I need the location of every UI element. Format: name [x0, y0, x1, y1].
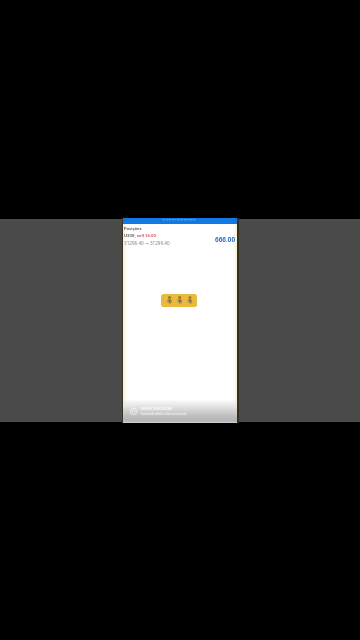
staticText: US30, sell 16.00	[124, 232, 156, 238]
button[interactable]: Posições	[124, 226, 142, 232]
button[interactable]: Trade app bar	[123, 218, 237, 224]
staticText: MENTE_VENCEDORA	[141, 407, 172, 411]
staticText: 31296.40 → 31299.40	[124, 240, 170, 246]
button[interactable]: US30, sell 16.00	[123, 232, 237, 245]
button[interactable]: Instagram credit	[130, 407, 187, 416]
button[interactable]: Money bag reactions	[161, 294, 197, 307]
staticText: Conteúdo diário sobre o mercado	[141, 412, 187, 416]
staticText: 666.00	[215, 235, 236, 244]
